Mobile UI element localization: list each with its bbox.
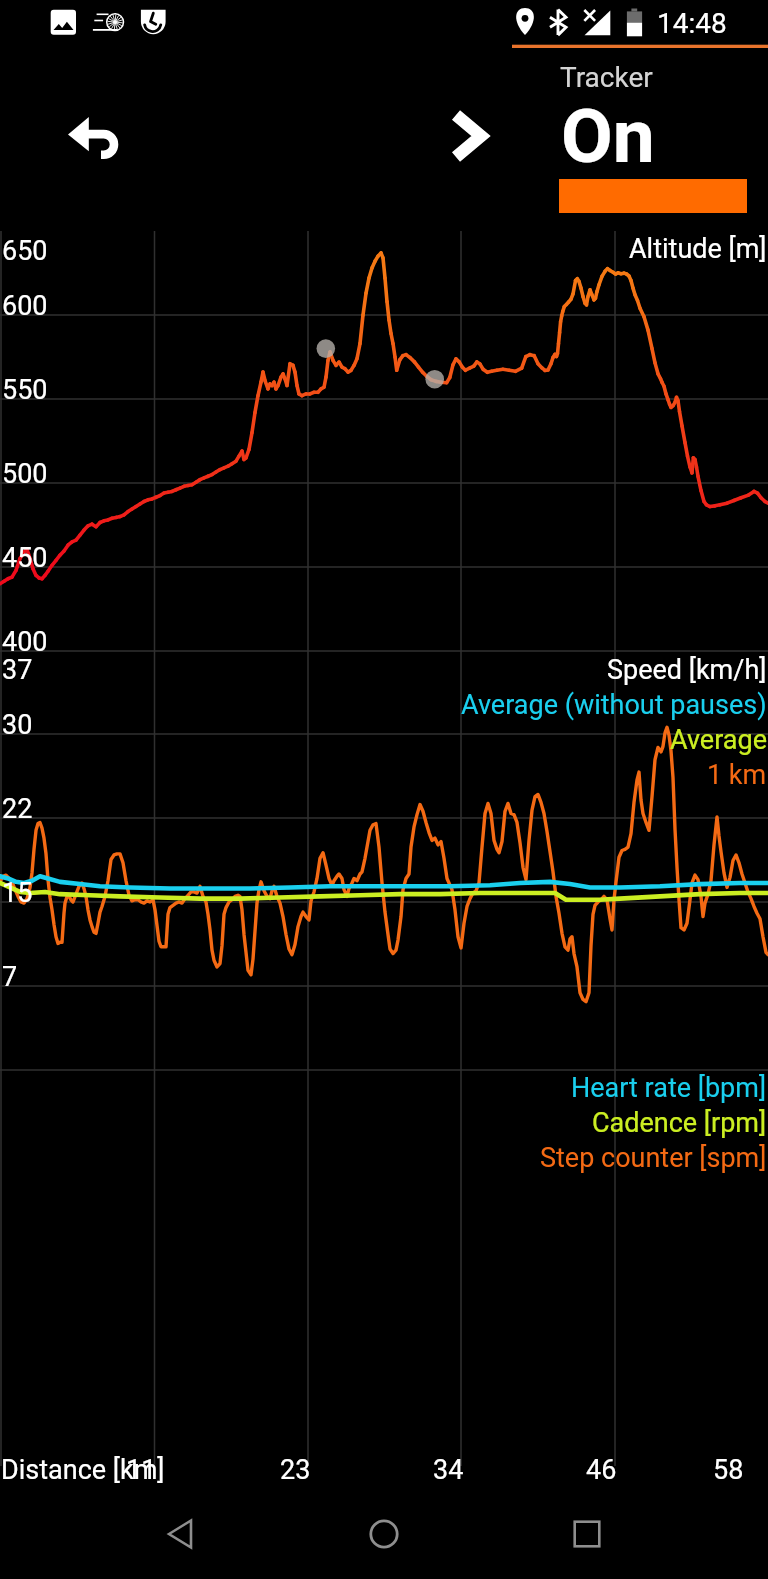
staticText: 46 — [586, 1454, 617, 1486]
button[interactable]: Undo — [56, 104, 128, 176]
staticText: 58 — [713, 1454, 744, 1486]
staticText: 14:48 — [657, 7, 727, 40]
staticText: 450 — [2, 542, 48, 574]
button[interactable]: Recents — [551, 1498, 623, 1570]
staticText: 34 — [433, 1454, 464, 1486]
staticText: 1 km — [707, 759, 767, 791]
button[interactable]: Tracker — [559, 60, 749, 215]
staticText: Altitude [m] — [629, 233, 767, 265]
staticText: Speed [km/h] — [607, 654, 767, 686]
staticText: Cadence [rpm] — [592, 1107, 767, 1139]
staticText: Step counter [spm] — [540, 1142, 767, 1174]
staticText: 30 — [2, 709, 33, 741]
staticText: 23 — [280, 1454, 311, 1486]
staticText: Average (without pauses) — [461, 689, 767, 721]
staticText: Average — [670, 724, 767, 756]
staticText: Tracker — [560, 61, 653, 94]
staticText: 550 — [2, 374, 48, 406]
staticText: Heart rate [bpm] — [571, 1072, 767, 1104]
button[interactable]: Home — [348, 1498, 420, 1570]
staticText: 7 — [2, 961, 18, 993]
staticText: 400 — [2, 626, 48, 658]
button[interactable]: Next — [440, 100, 502, 162]
staticText: 22 — [2, 793, 33, 825]
staticText: 650 — [2, 235, 48, 267]
staticText: 600 — [2, 290, 48, 322]
staticText: 15 — [2, 877, 33, 909]
staticText: On — [561, 92, 655, 180]
staticText: 500 — [2, 458, 48, 490]
button[interactable]: Back — [144, 1498, 216, 1570]
staticText: Distance [km] — [1, 1454, 165, 1486]
staticText: 11 — [126, 1454, 157, 1486]
staticText: 37 — [2, 654, 33, 686]
